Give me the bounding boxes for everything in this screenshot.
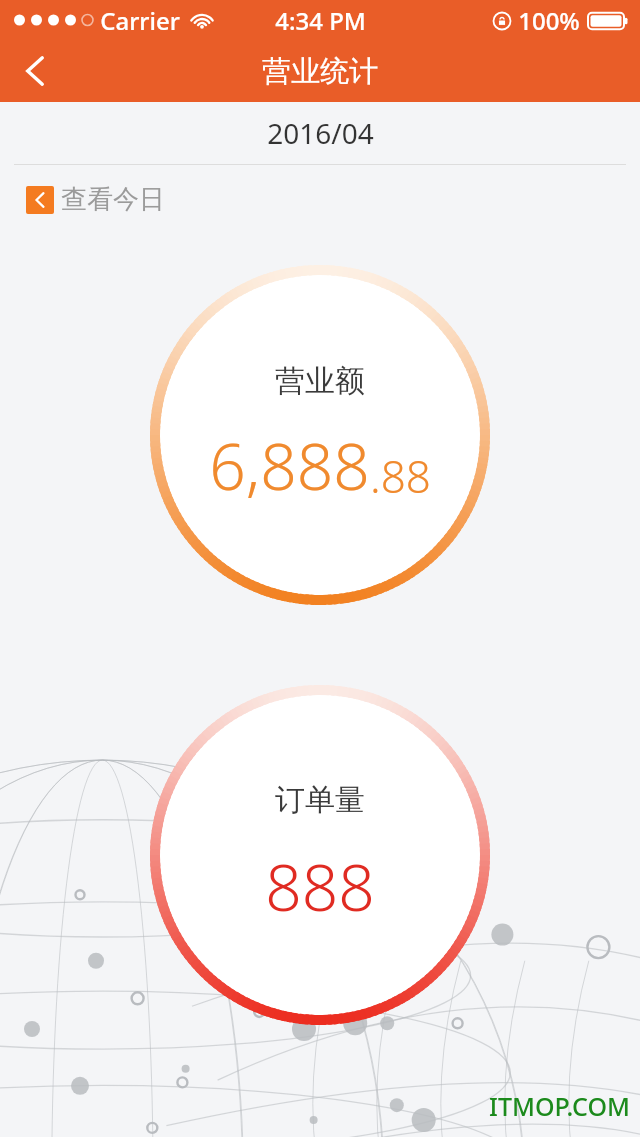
staticText: 2016/04	[267, 114, 374, 152]
staticText: .88	[370, 446, 431, 506]
staticText: 888	[265, 843, 375, 930]
staticText: Carrier	[100, 4, 180, 37]
staticText: 营业统计	[262, 53, 378, 90]
staticText: 4:34 PM	[275, 4, 366, 37]
staticText: 订单量	[275, 781, 365, 819]
staticText: 营业额	[275, 362, 365, 400]
button[interactable]: 查看今日	[24, 177, 167, 222]
staticText: 查看今日	[61, 183, 165, 216]
staticText: 100%	[518, 4, 580, 37]
button[interactable]: 营业额	[150, 265, 490, 605]
button[interactable]: Back	[0, 40, 70, 102]
button[interactable]: 订单量	[150, 685, 490, 1025]
button[interactable]: 2016/04	[0, 102, 640, 164]
staticText: ITMOP.COM	[489, 1089, 630, 1123]
staticText: 6,888	[209, 422, 370, 509]
